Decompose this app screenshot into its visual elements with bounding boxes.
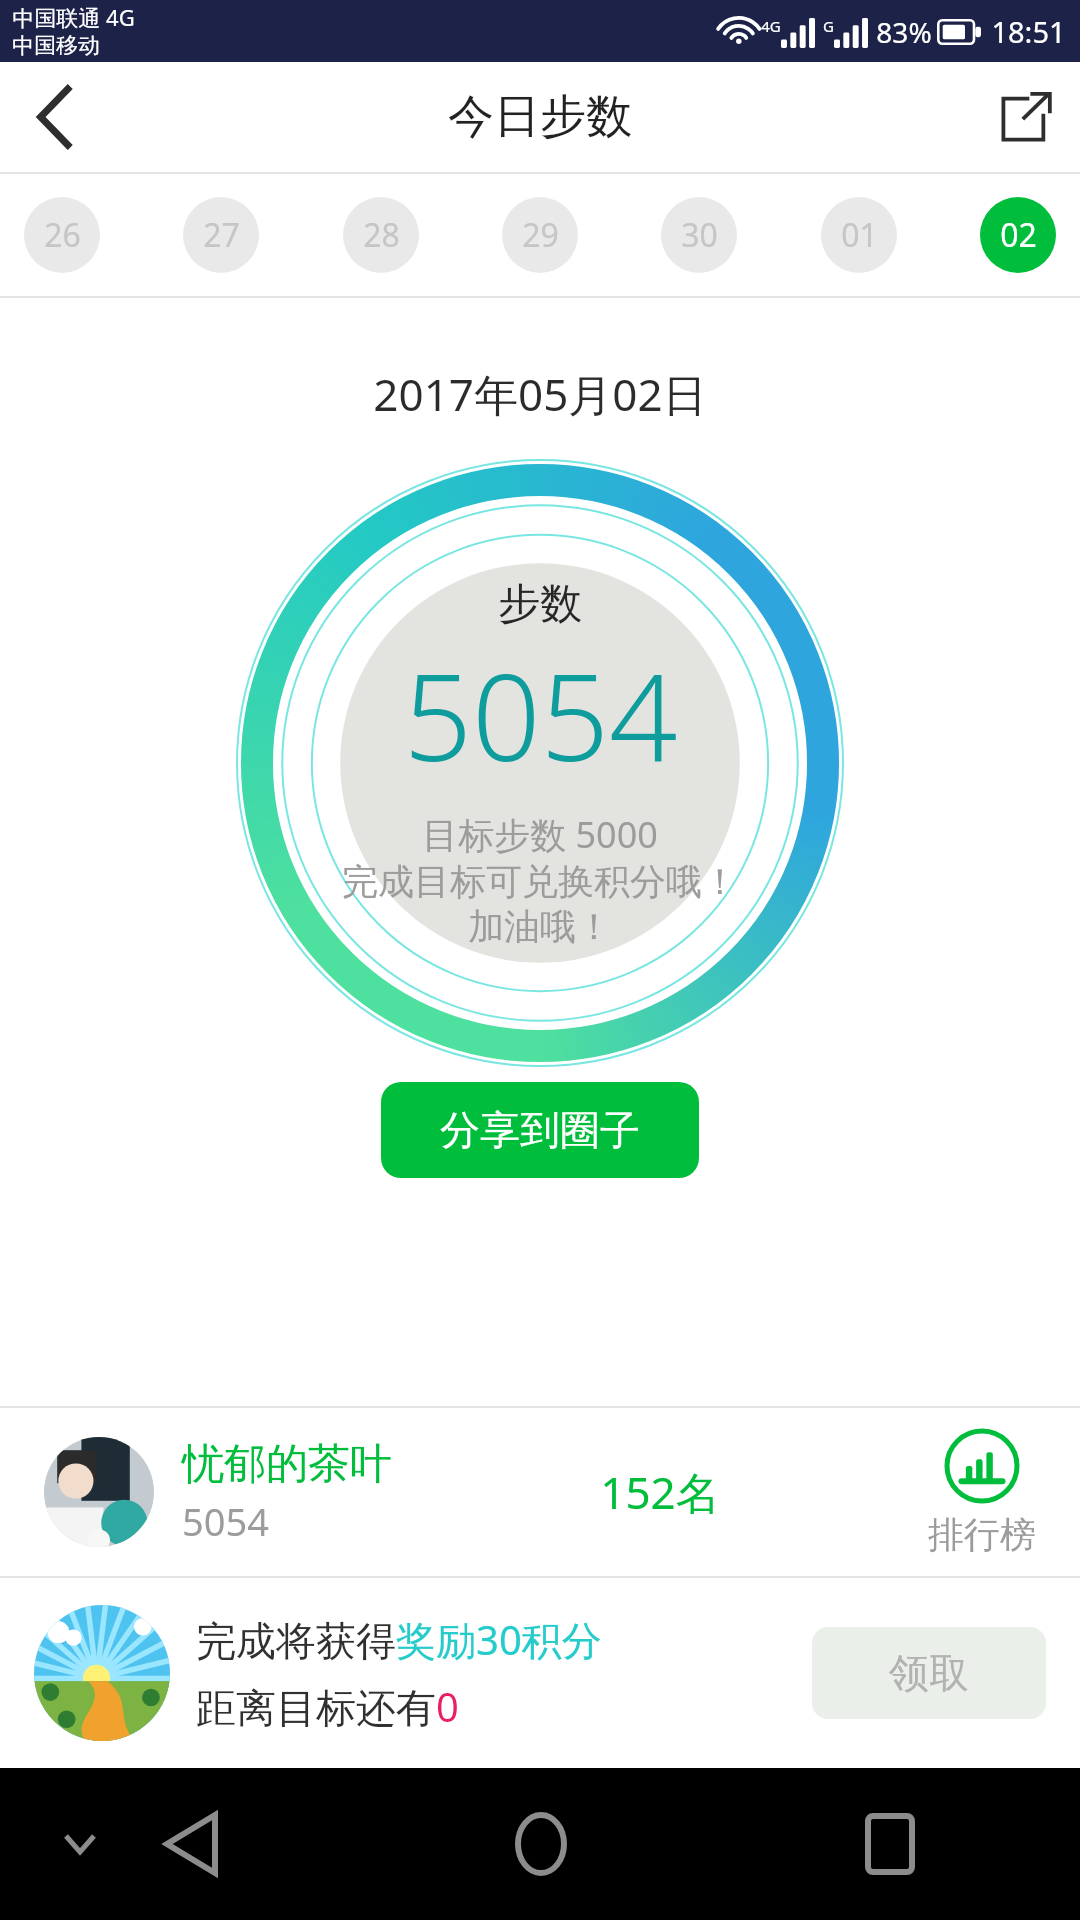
staticText: 完成将获得奖励30积分 xyxy=(196,1612,602,1667)
button[interactable]: Hide keyboard xyxy=(44,1808,116,1880)
button[interactable]: 领取 xyxy=(812,1627,1046,1719)
staticText: 4G xyxy=(761,16,781,36)
staticText: 领取 xyxy=(889,1648,969,1698)
staticText: 29 xyxy=(522,213,559,257)
staticText: 83% xyxy=(876,13,932,51)
button[interactable]: 30 xyxy=(661,197,737,273)
staticText: 今日步数 xyxy=(448,88,632,146)
staticText: 5054 xyxy=(182,1495,269,1547)
staticText: 完成目标可兑换积分哦！ xyxy=(342,859,738,904)
staticText: G xyxy=(823,16,834,36)
staticText: 152名 xyxy=(600,1462,720,1522)
staticText: 中国联通 4G xyxy=(12,2,135,32)
staticText: 排行榜 xyxy=(928,1512,1036,1557)
button[interactable]: 28 xyxy=(343,197,419,273)
button[interactable]: Back xyxy=(0,62,110,172)
staticText: 2017年05月02日 xyxy=(373,364,707,424)
staticText: 距离目标还有0 xyxy=(196,1679,459,1734)
staticText: 02 xyxy=(1000,213,1037,257)
staticText: 分享到圈子 xyxy=(440,1105,640,1155)
button[interactable]: 27 xyxy=(183,197,259,273)
button[interactable]: 01 xyxy=(821,197,897,273)
staticText: 30 xyxy=(681,213,718,257)
staticText: 27 xyxy=(203,213,240,257)
button[interactable]: 29 xyxy=(502,197,578,273)
staticText: 01 xyxy=(841,213,878,257)
button[interactable]: Home xyxy=(491,1794,591,1894)
button[interactable]: Share xyxy=(970,62,1080,172)
button[interactable]: 忧郁的茶叶 xyxy=(0,1408,1080,1576)
button[interactable]: 分享到圈子 xyxy=(381,1082,699,1178)
button[interactable]: Back xyxy=(141,1794,241,1894)
button[interactable]: Recent apps xyxy=(840,1794,940,1894)
staticText: 18:51 xyxy=(991,12,1066,51)
staticText: 目标步数 5000 xyxy=(422,810,658,859)
staticText: 步数 xyxy=(498,578,582,631)
button[interactable]: 02 xyxy=(980,197,1056,273)
staticText: 28 xyxy=(363,213,400,257)
button[interactable]: 26 xyxy=(24,197,100,273)
staticText: 26 xyxy=(44,213,81,257)
staticText: 5054 xyxy=(403,633,678,796)
staticText: 加油哦！ xyxy=(468,904,612,949)
staticText: 忧郁的茶叶 xyxy=(182,1438,392,1491)
staticText: 中国移动 xyxy=(12,32,100,60)
